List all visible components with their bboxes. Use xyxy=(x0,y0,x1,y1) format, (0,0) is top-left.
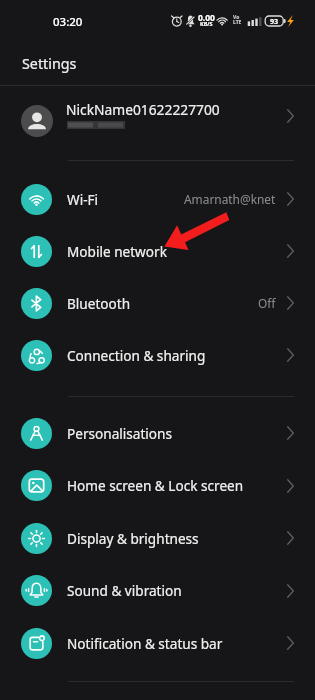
staticText: Connection & sharing xyxy=(67,346,206,365)
staticText: Notification & status bar xyxy=(67,634,223,653)
button[interactable]: Sound & vibration xyxy=(0,564,315,617)
staticText: 93 xyxy=(270,16,279,26)
staticText: 03:20 xyxy=(53,14,83,30)
other: Open xyxy=(287,348,294,362)
staticText: LTE xyxy=(233,19,242,26)
staticText: Mobile network xyxy=(67,242,167,261)
other: Open xyxy=(287,426,294,440)
staticText: Personalisations xyxy=(67,424,172,443)
staticText: Vo xyxy=(233,14,240,21)
staticText: Bluetooth xyxy=(67,294,131,313)
other: Open xyxy=(287,109,294,123)
staticText: Off xyxy=(258,295,276,311)
other: Open xyxy=(287,244,294,258)
button[interactable]: Wi-Fi xyxy=(0,173,315,225)
other: Open xyxy=(287,531,294,545)
other: Open xyxy=(287,296,294,310)
staticText: Amarnath@knet xyxy=(184,191,276,207)
other: Open xyxy=(287,479,294,493)
button[interactable]: Bluetooth xyxy=(0,277,315,329)
staticText: Sound & vibration xyxy=(67,581,182,600)
staticText: Display & brightness xyxy=(67,529,199,548)
staticText: Wi-Fi xyxy=(67,190,99,209)
button[interactable]: Home screen & Lock screen xyxy=(0,459,315,512)
staticText: 0.00 xyxy=(198,12,215,24)
button[interactable]: Display & brightness xyxy=(0,512,315,564)
staticText: Settings xyxy=(22,54,77,73)
button[interactable]: Personalisations xyxy=(0,407,315,459)
other: Open xyxy=(287,192,294,206)
button[interactable]: Mobile network xyxy=(0,225,315,277)
button[interactable]: NickName01622227700 xyxy=(0,86,315,146)
other: Open xyxy=(287,584,294,598)
other: Open xyxy=(287,636,294,650)
button[interactable]: Connection & sharing xyxy=(0,329,315,381)
staticText: KB/S xyxy=(200,20,213,27)
staticText: Home screen & Lock screen xyxy=(67,476,244,495)
button[interactable]: Notification & status bar xyxy=(0,617,315,669)
staticText: NickName01622227700 xyxy=(66,100,220,119)
